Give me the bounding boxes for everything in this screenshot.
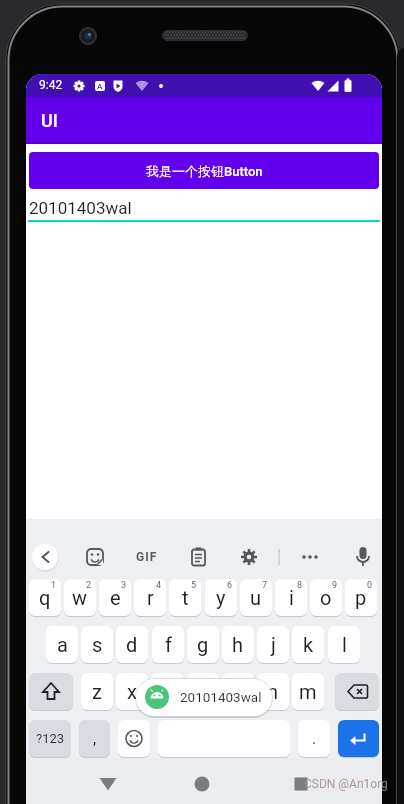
button[interactable] — [281, 764, 321, 804]
staticText: A — [97, 82, 103, 91]
button[interactable]: l — [328, 626, 360, 663]
button[interactable]: w — [64, 579, 96, 616]
staticText: p — [355, 586, 367, 609]
staticText: e — [110, 586, 121, 609]
button[interactable]: i — [275, 579, 307, 616]
staticText: 20101403wal — [29, 198, 132, 218]
staticText: f — [165, 633, 172, 656]
staticText: 4 — [156, 580, 162, 591]
button[interactable] — [183, 542, 213, 572]
button[interactable]: t — [169, 579, 201, 616]
staticText: 5 — [191, 580, 197, 591]
staticText: 9 — [332, 580, 338, 591]
staticText: CSDN @An1org — [304, 777, 388, 791]
button[interactable]: e — [99, 579, 131, 616]
staticText: v — [198, 680, 208, 703]
staticText: k — [303, 633, 314, 656]
staticText: t — [182, 586, 189, 609]
button[interactable] — [182, 764, 222, 804]
button[interactable]: u — [240, 579, 272, 616]
staticText: 1 — [51, 580, 57, 591]
button[interactable]: 我是一个按钮Button — [29, 152, 379, 189]
button[interactable]: p — [345, 579, 377, 616]
button[interactable] — [335, 673, 379, 710]
button[interactable]: o — [310, 579, 342, 616]
button[interactable]: x — [116, 673, 148, 710]
button[interactable]: s — [81, 626, 113, 663]
button[interactable]: ?123 — [29, 720, 71, 757]
button[interactable] — [88, 764, 128, 804]
staticText: , — [93, 729, 97, 748]
button[interactable] — [29, 673, 73, 710]
staticText: h — [232, 633, 244, 656]
staticText: 8 — [297, 580, 303, 591]
button[interactable]: . — [298, 720, 330, 757]
staticText: 9:42 — [39, 78, 63, 92]
staticText: l — [342, 633, 347, 656]
staticText: ?123 — [36, 731, 65, 746]
staticText: z — [92, 680, 102, 703]
staticText: o — [320, 586, 332, 609]
staticText: g — [197, 633, 209, 656]
staticText: i — [289, 586, 294, 609]
staticText: d — [126, 633, 138, 656]
button[interactable] — [295, 542, 325, 572]
staticText: j — [271, 633, 276, 656]
button[interactable] — [130, 542, 160, 572]
button[interactable]: z — [81, 673, 113, 710]
button[interactable]: m — [292, 673, 324, 710]
button[interactable]: , — [79, 720, 110, 757]
button[interactable]: y — [205, 579, 237, 616]
button[interactable]: h — [222, 626, 254, 663]
button[interactable]: v — [187, 673, 219, 710]
button[interactable] — [32, 544, 58, 570]
button[interactable]: d — [116, 626, 148, 663]
staticText: 2 — [86, 580, 92, 591]
staticText: 6 — [227, 580, 233, 591]
staticText: u — [250, 586, 262, 609]
button[interactable] — [80, 542, 110, 572]
button[interactable]: g — [187, 626, 219, 663]
staticText: s — [92, 633, 103, 656]
button[interactable]: r — [134, 579, 166, 616]
button[interactable]: q — [29, 579, 61, 616]
button[interactable]: c — [151, 673, 183, 710]
staticText: r — [147, 586, 154, 609]
staticText: UI — [41, 110, 58, 131]
staticText: c — [162, 680, 173, 703]
staticText: n — [267, 680, 279, 703]
staticText: a — [57, 633, 68, 656]
staticText: b — [232, 680, 244, 703]
staticText: w — [72, 586, 88, 609]
button[interactable]: 20101403wal — [26, 196, 382, 224]
staticText: 20101403wal — [180, 689, 262, 705]
staticText: x — [127, 680, 137, 703]
staticText: . — [312, 729, 317, 748]
button[interactable]: a — [46, 626, 78, 663]
staticText: GIF — [136, 550, 158, 564]
button[interactable] — [338, 720, 379, 757]
staticText: m — [299, 680, 317, 703]
staticText: 我是一个按钮Button — [146, 163, 263, 179]
button[interactable] — [118, 720, 150, 757]
staticText: 7 — [262, 580, 268, 591]
button[interactable]: j — [257, 626, 289, 663]
button[interactable]: n — [257, 673, 289, 710]
button[interactable]: 20101403wal — [136, 679, 272, 716]
button[interactable]: b — [222, 673, 254, 710]
button[interactable] — [234, 542, 264, 572]
button[interactable]: f — [152, 626, 184, 663]
staticText: 3 — [121, 580, 127, 591]
staticText: y — [216, 586, 226, 609]
staticText: q — [39, 586, 51, 609]
staticText: 0 — [367, 580, 373, 591]
button[interactable] — [348, 542, 378, 572]
button[interactable]: k — [292, 626, 324, 663]
